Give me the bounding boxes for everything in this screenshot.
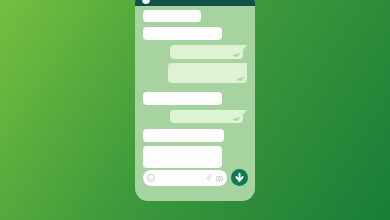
button[interactable]: Type a message — [143, 170, 227, 186]
button[interactable]: Received message — [143, 27, 222, 40]
button[interactable]: Received message — [143, 10, 201, 22]
button[interactable]: Record voice message — [231, 169, 248, 186]
button[interactable]: Received message — [143, 129, 224, 142]
button[interactable]: Sent message — [170, 110, 247, 123]
button[interactable]: Received message — [143, 146, 222, 168]
button[interactable]: Sent message — [168, 63, 247, 83]
button[interactable]: Sent message — [170, 45, 247, 59]
button[interactable]: Received message — [143, 92, 222, 105]
button[interactable]: Chat header — [135, 0, 255, 6]
